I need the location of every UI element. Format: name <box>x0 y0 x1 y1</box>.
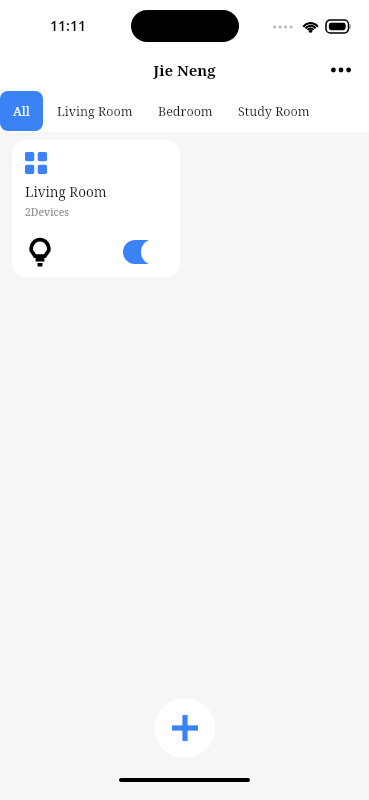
button[interactable]: Add device <box>155 698 215 758</box>
staticText: 11:11 <box>50 16 86 35</box>
staticText: All <box>13 103 30 120</box>
button[interactable]: More options <box>321 50 361 90</box>
staticText: Study Room <box>238 103 310 120</box>
staticText: Jie Neng <box>153 60 216 80</box>
staticText: Living Room <box>25 183 107 201</box>
button[interactable]: Living Room <box>57 91 133 131</box>
button[interactable]: Bedroom <box>158 91 213 131</box>
button[interactable]: Light bulb <box>25 237 55 267</box>
staticText: Bedroom <box>158 103 213 120</box>
staticText: Living Room <box>57 103 133 120</box>
button[interactable]: Toggle living room <box>123 239 167 265</box>
staticText: 2Devices <box>25 205 70 219</box>
button[interactable]: All <box>0 91 43 131</box>
button[interactable]: Study Room <box>238 91 310 131</box>
button[interactable]: Living Room <box>12 140 180 277</box>
